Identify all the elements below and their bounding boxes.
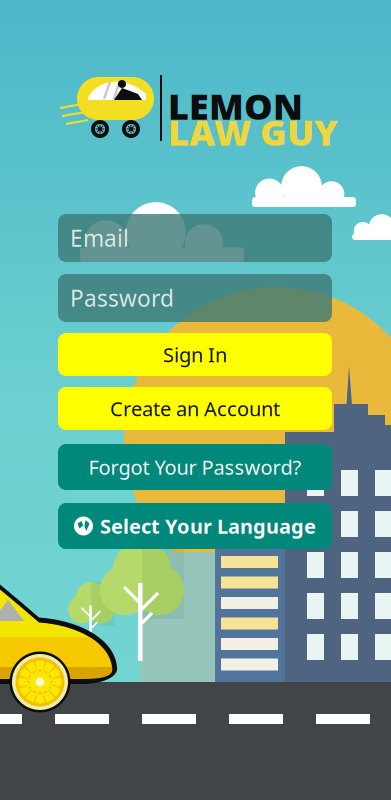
staticText: Select Your Language: [100, 513, 316, 539]
staticText: LAW GUY: [168, 108, 338, 156]
staticText: Sign In: [163, 341, 227, 368]
button[interactable]: Sign In: [58, 333, 332, 376]
button[interactable]: Create an Account: [58, 387, 332, 430]
staticText: Email: [70, 223, 129, 253]
staticText: LEMON: [168, 82, 303, 130]
staticText: Password: [70, 283, 174, 313]
button[interactable]: Forgot Your Password?: [58, 444, 332, 490]
button[interactable]: Select Your Language: [58, 503, 332, 549]
staticText: Create an Account: [110, 395, 280, 422]
staticText: Forgot Your Password?: [88, 454, 301, 480]
